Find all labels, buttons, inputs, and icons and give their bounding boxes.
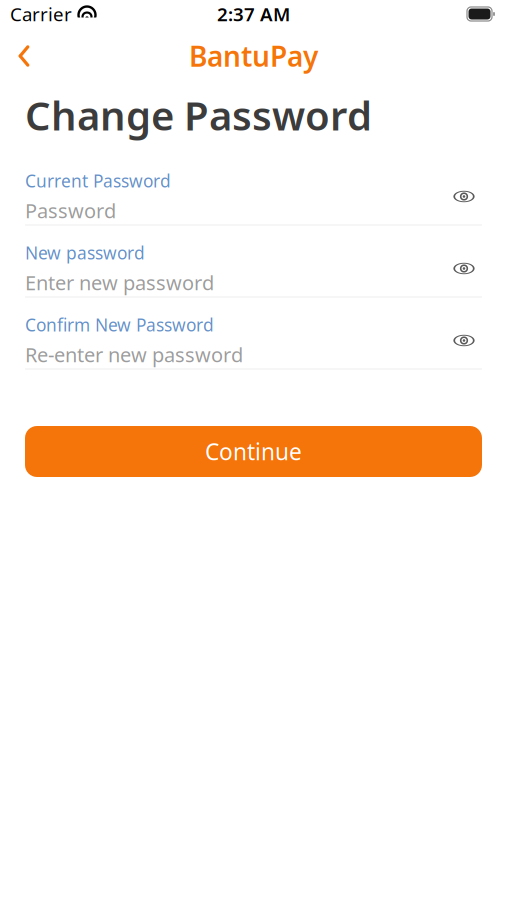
staticText: New password — [25, 241, 145, 264]
staticText: Carrier — [10, 2, 72, 26]
staticText: Re-enter new password — [25, 341, 243, 368]
staticText: Continue — [205, 436, 302, 466]
staticText: BantuPay — [189, 37, 318, 75]
button[interactable]: Continue — [25, 426, 482, 477]
staticText: Confirm New Password — [25, 313, 214, 336]
button[interactable]: Show Confirm New Password — [446, 322, 482, 358]
staticText: Enter new password — [25, 269, 214, 296]
button[interactable]: Back — [2, 34, 46, 78]
staticText: Current Password — [25, 169, 171, 192]
staticText: Change Password — [25, 88, 372, 141]
button[interactable]: Show Current Password — [446, 178, 482, 214]
staticText: 2:37 AM — [217, 2, 290, 26]
button[interactable]: Show New password — [446, 250, 482, 286]
staticText: Password — [25, 197, 116, 224]
